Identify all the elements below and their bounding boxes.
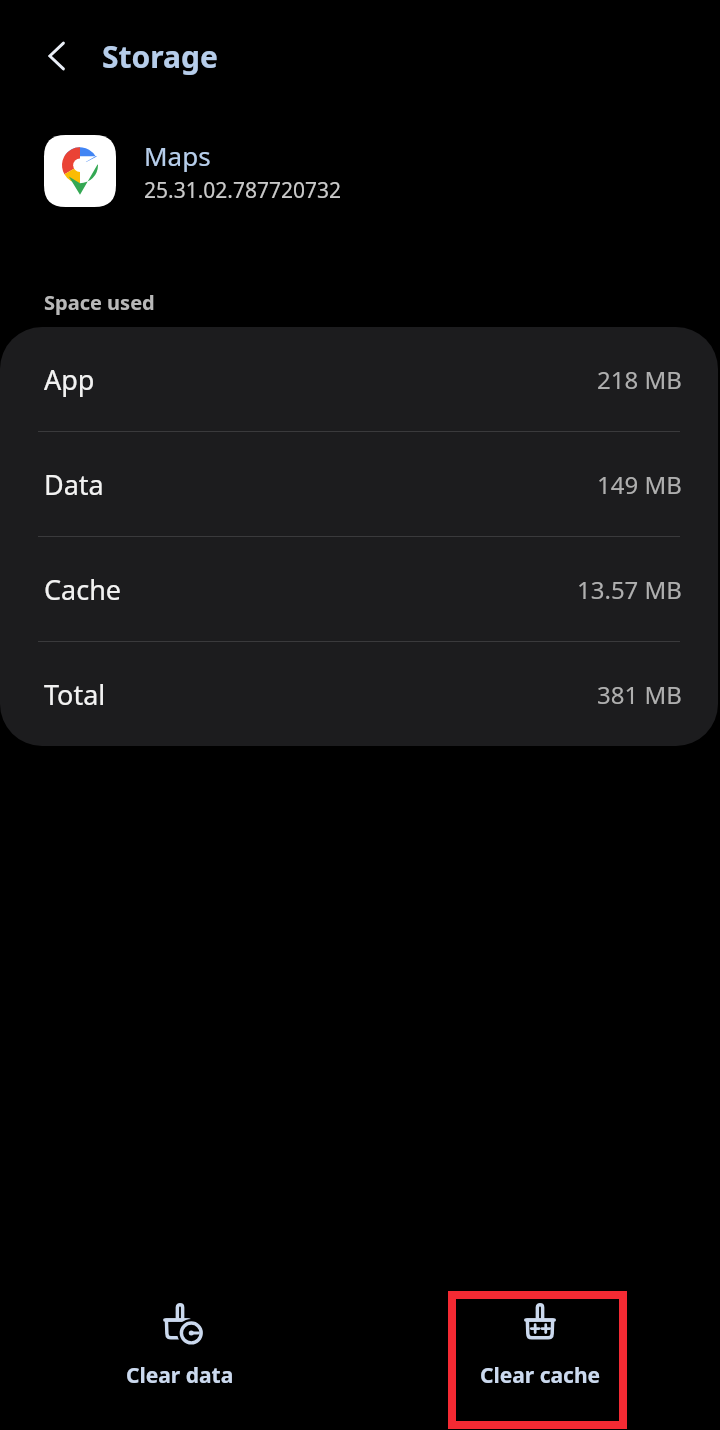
staticText: 218 MB (597, 363, 682, 396)
staticText: Space used (44, 289, 155, 316)
button[interactable]: App (0, 327, 718, 431)
button[interactable]: Back (26, 24, 90, 88)
staticText: 25.31.02.787720732 (144, 176, 342, 205)
button[interactable]: Clear cache (360, 1280, 720, 1410)
staticText: Clear cache (480, 1361, 601, 1390)
button[interactable]: Data (0, 432, 718, 536)
staticText: App (44, 361, 95, 398)
other: Clear cache (517, 1301, 563, 1347)
button[interactable]: Cache (0, 537, 718, 641)
other: Clear data (157, 1301, 203, 1347)
staticText: Clear data (126, 1361, 234, 1390)
staticText: 13.57 MB (577, 573, 682, 606)
staticText: 381 MB (597, 678, 682, 711)
button[interactable]: Total (0, 642, 718, 746)
staticText: Data (44, 466, 104, 503)
button[interactable]: Maps (0, 128, 720, 214)
staticText: Maps (144, 138, 211, 173)
staticText: Total (44, 676, 106, 713)
staticText: 149 MB (597, 468, 682, 501)
staticText: Storage (102, 36, 218, 77)
button[interactable]: Clear data (0, 1280, 360, 1410)
staticText: Cache (44, 571, 122, 608)
